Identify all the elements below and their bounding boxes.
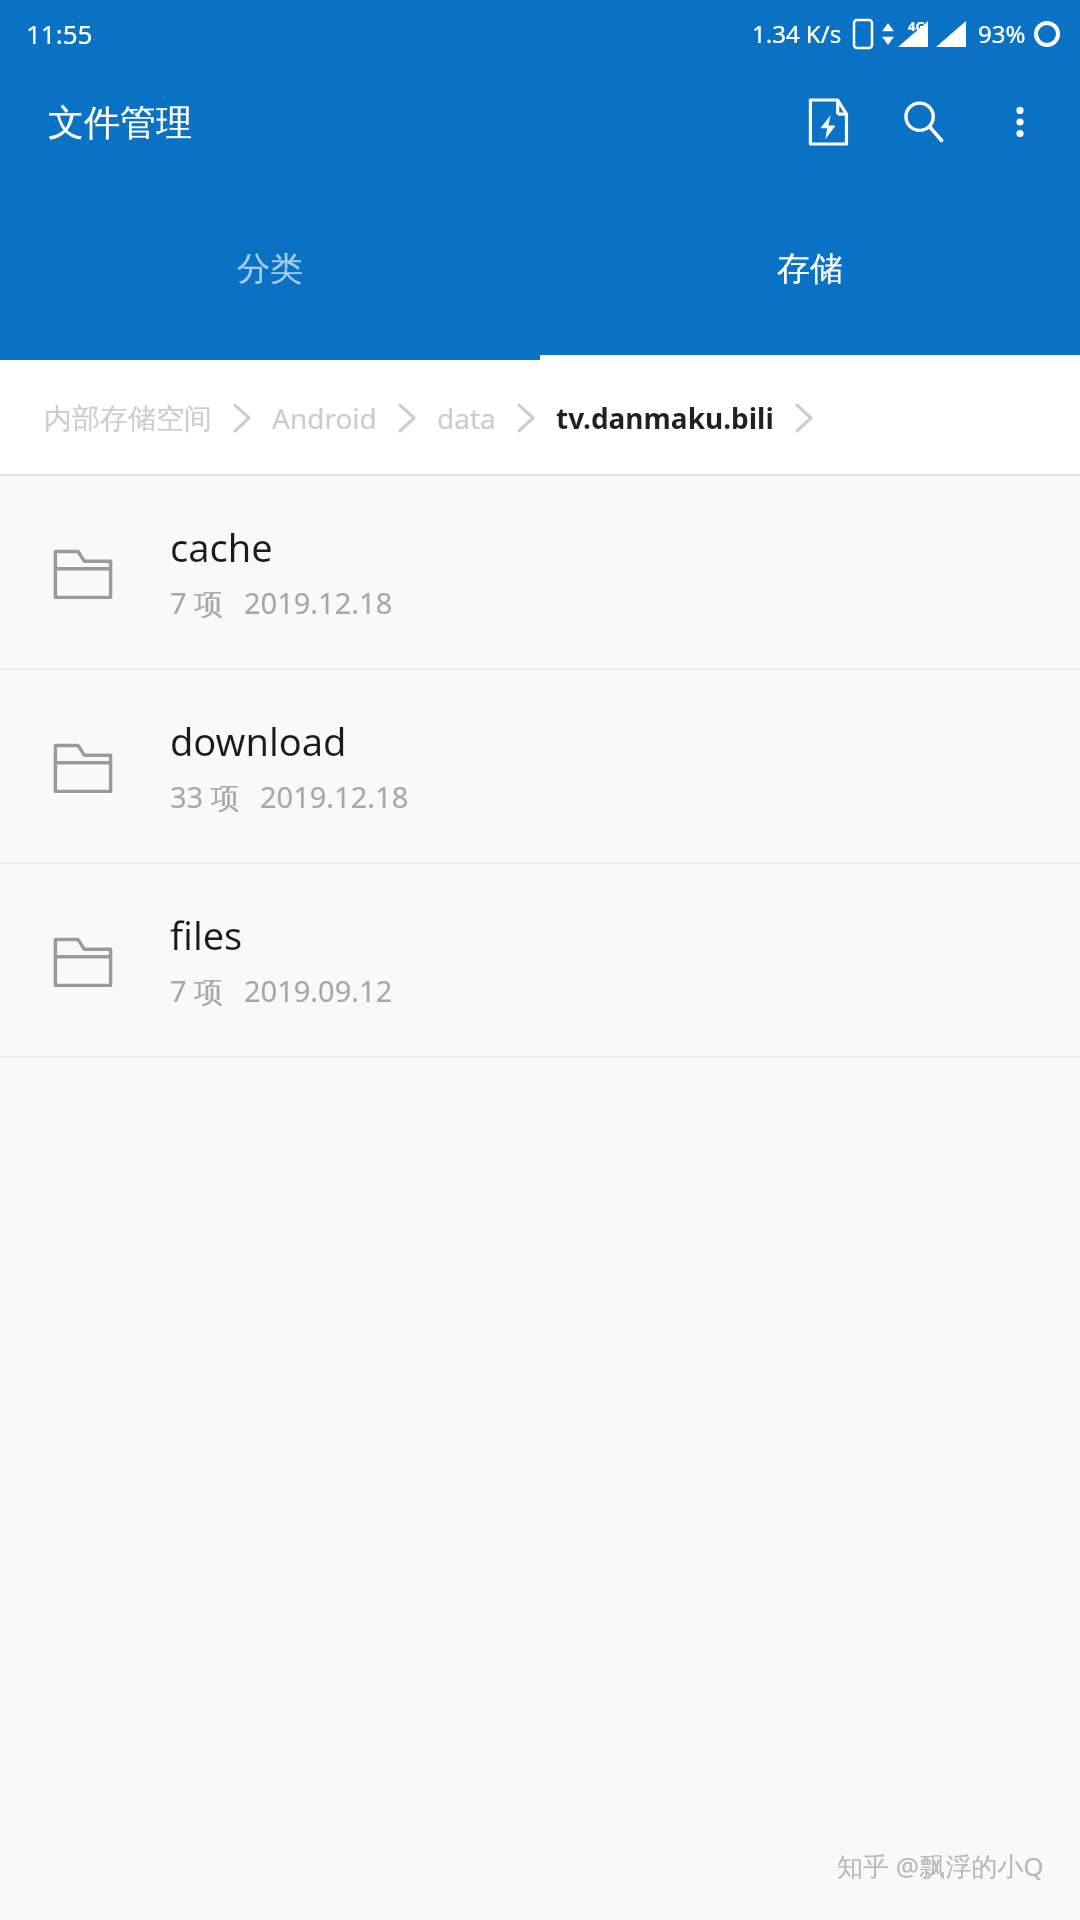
staticText: 文件管理 (48, 100, 192, 145)
staticText: 2019.12.18 (260, 777, 409, 816)
staticText: 2019.09.12 (244, 971, 393, 1010)
button[interactable]: Search (876, 74, 972, 170)
button[interactable]: 内部存储空间 (44, 401, 212, 436)
staticText: 7 项 (170, 971, 224, 1011)
staticText: 11:55 (26, 16, 93, 51)
staticText: 存储 (777, 248, 843, 290)
button[interactable]: 分类 (0, 178, 540, 360)
staticText: 1.34 K/s (752, 17, 842, 50)
button[interactable]: tv.danmaku.bili (556, 399, 774, 437)
button[interactable]: data (437, 399, 496, 437)
staticText: 33 项 (170, 777, 240, 817)
staticText: 知乎 @飘浮的小Q (837, 1848, 1044, 1884)
staticText: files (170, 909, 243, 961)
staticText: 93% (978, 17, 1026, 50)
button[interactable]: download (0, 670, 1080, 862)
staticText: 7 项 (170, 583, 224, 623)
button[interactable]: 存储 (540, 178, 1080, 360)
staticText: cache (170, 521, 273, 573)
staticText: 分类 (237, 248, 303, 290)
button[interactable]: files (0, 864, 1080, 1056)
button[interactable]: Storage analysis (780, 74, 876, 170)
staticText: download (170, 715, 347, 767)
staticText: 2019.12.18 (244, 583, 393, 622)
button[interactable]: cache (0, 476, 1080, 668)
staticText: 4G (908, 17, 925, 35)
button[interactable]: More options (972, 74, 1068, 170)
button[interactable]: Android (272, 399, 377, 437)
